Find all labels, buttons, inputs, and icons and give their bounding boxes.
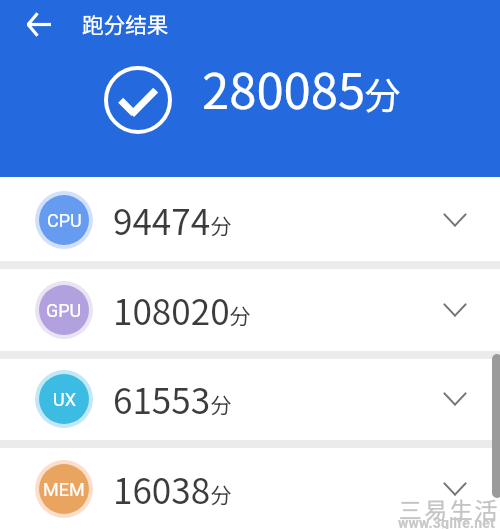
button[interactable]: CPU xyxy=(0,177,500,261)
staticText: 61553 xyxy=(113,373,211,424)
staticText: 分 xyxy=(364,66,401,120)
staticText: 分 xyxy=(229,299,251,330)
button[interactable]: MEM xyxy=(0,446,500,529)
staticText: 280085 xyxy=(202,52,366,123)
staticText: 三易生活 xyxy=(399,492,500,525)
button[interactable]: Expand xyxy=(433,288,477,332)
staticText: 跑分结果 xyxy=(82,8,169,39)
staticText: UX xyxy=(53,389,76,410)
staticText: GPU xyxy=(46,300,82,321)
staticText: 分 xyxy=(210,478,232,509)
button[interactable]: UX xyxy=(0,356,500,440)
staticText: 108020 xyxy=(113,284,230,335)
staticText: 分 xyxy=(210,209,232,240)
staticText: 分 xyxy=(210,388,232,419)
staticText: CPU xyxy=(47,210,82,231)
staticText: MEM xyxy=(43,479,85,500)
button[interactable]: GPU xyxy=(0,267,500,351)
button[interactable]: Expand xyxy=(433,198,477,242)
button[interactable]: Expand xyxy=(433,377,477,421)
staticText: 94474 xyxy=(113,194,211,245)
button[interactable]: Back xyxy=(21,7,55,41)
button[interactable]: Expand xyxy=(433,467,477,511)
staticText: 16038 xyxy=(113,463,211,514)
staticText: www.3glife.net xyxy=(398,515,495,529)
